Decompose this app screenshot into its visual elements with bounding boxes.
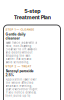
staticText: STEP 2 — TREAT [5,65,31,68]
staticText: Gentle daily cleanser [5,32,25,40]
staticText: Apply a thin layer over the whole affect… [5,78,37,100]
staticText: STEP 1 — CLEANSE [5,28,34,31]
staticText: 5-step Treatment Plan [13,8,50,20]
staticText: Wash twice a day with a mild, non-foamin… [5,41,37,64]
staticText: Benzoyl peroxide 2.5% [5,69,33,77]
